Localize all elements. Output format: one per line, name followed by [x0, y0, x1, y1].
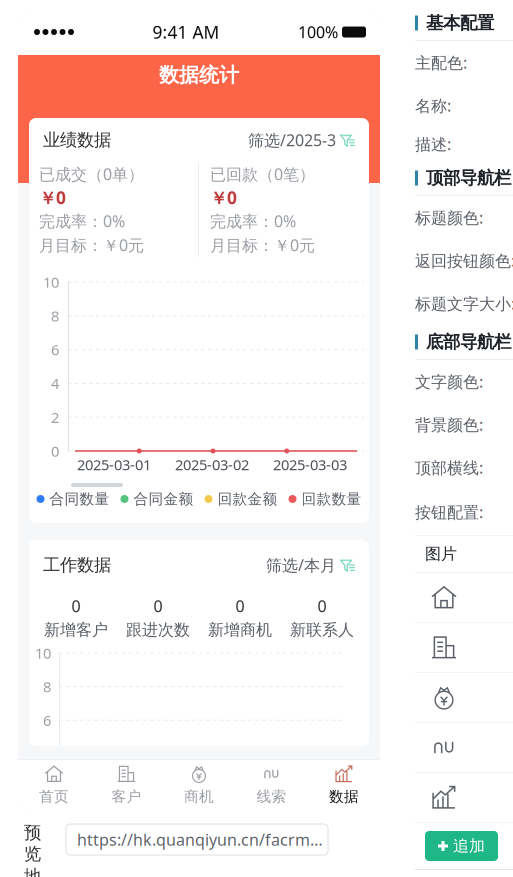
staticText: https://hk.quanqiyun.cn/facrm/#/pages/lo…	[77, 829, 328, 850]
staticText: 月目标：￥0元	[210, 234, 315, 256]
staticText: 线索	[256, 787, 286, 805]
button[interactable]: 筛选/2025-3	[248, 129, 355, 151]
button[interactable]: 数据	[310, 760, 378, 810]
staticText: 预览	[24, 822, 41, 865]
staticText: 追加	[453, 836, 485, 856]
staticText: 6	[43, 710, 51, 730]
staticText: 底部导航栏	[426, 331, 511, 353]
staticText: ￥0	[39, 186, 66, 209]
staticText: 100%	[298, 21, 338, 43]
staticText: 8	[51, 306, 59, 326]
staticText: 基本配置	[426, 12, 494, 34]
staticText: 业绩数据	[43, 129, 111, 151]
staticText: 商机	[184, 787, 214, 805]
staticText: 背景颜色:	[415, 414, 483, 435]
staticText: 新增商机	[208, 620, 272, 640]
staticText: 月目标：￥0元	[39, 234, 144, 256]
button[interactable]: 商机	[165, 760, 233, 810]
staticText: 返回按钮颜色:	[415, 250, 513, 271]
button[interactable]: 客户	[92, 760, 160, 810]
button[interactable]: 追加	[425, 831, 498, 861]
button[interactable]: 线索	[237, 760, 305, 810]
staticText: 完成率：0%	[39, 210, 125, 232]
staticText: 2025-03-01	[77, 455, 151, 474]
staticText: 跟进次数	[126, 620, 190, 640]
staticText: 数据统计	[159, 63, 239, 87]
staticText: 4	[51, 374, 59, 393]
staticText: 标题颜色:	[415, 207, 483, 228]
staticText: 0	[235, 595, 244, 617]
staticText: 名称:	[415, 95, 451, 116]
staticText: 顶部横线:	[415, 457, 483, 478]
staticText: 主配色:	[415, 52, 467, 73]
staticText: 2025-03-03	[273, 455, 347, 474]
staticText: 标题文字大小:	[415, 293, 513, 314]
staticText: 回款数量	[301, 490, 361, 508]
staticText: 2025-03-02	[175, 455, 249, 474]
button[interactable]: 首页	[20, 760, 88, 810]
staticText: 按钮配置:	[415, 501, 483, 523]
staticText: 地址	[24, 866, 41, 877]
staticText: 筛选/2025-3	[248, 129, 336, 151]
staticText: ￥0	[210, 186, 237, 209]
staticText: 已成交（0单）	[39, 163, 144, 185]
staticText: 完成率：0%	[210, 210, 296, 232]
staticText: 文字颜色:	[415, 371, 483, 392]
staticText: 顶部导航栏	[426, 167, 511, 189]
staticText: 数据	[329, 787, 359, 805]
staticText: 回款金额	[217, 490, 277, 508]
staticText: 工作数据	[43, 554, 111, 576]
staticText: 0	[317, 595, 326, 617]
staticText: 10	[43, 272, 59, 292]
staticText: 0	[153, 595, 162, 617]
staticText: 新联系人	[290, 620, 354, 640]
staticText: 新增客户	[44, 620, 108, 640]
staticText: 2	[51, 407, 59, 427]
staticText: 筛选/本月	[266, 554, 336, 576]
staticText: 图片	[425, 544, 457, 564]
staticText: 首页	[39, 787, 69, 805]
staticText: 9:41 AM	[152, 20, 219, 43]
staticText: 8	[43, 677, 51, 696]
staticText: 0	[51, 441, 59, 461]
staticText: 10	[35, 643, 51, 663]
staticText: 6	[51, 340, 59, 359]
button[interactable]: 筛选/本月	[266, 554, 355, 576]
staticText: 描述:	[415, 133, 451, 155]
staticText: 已回款（0笔）	[210, 163, 315, 185]
staticText: 0	[71, 595, 80, 617]
staticText: 合同数量	[49, 490, 109, 508]
staticText: 合同金额	[133, 490, 193, 508]
staticText: 客户	[111, 787, 141, 805]
